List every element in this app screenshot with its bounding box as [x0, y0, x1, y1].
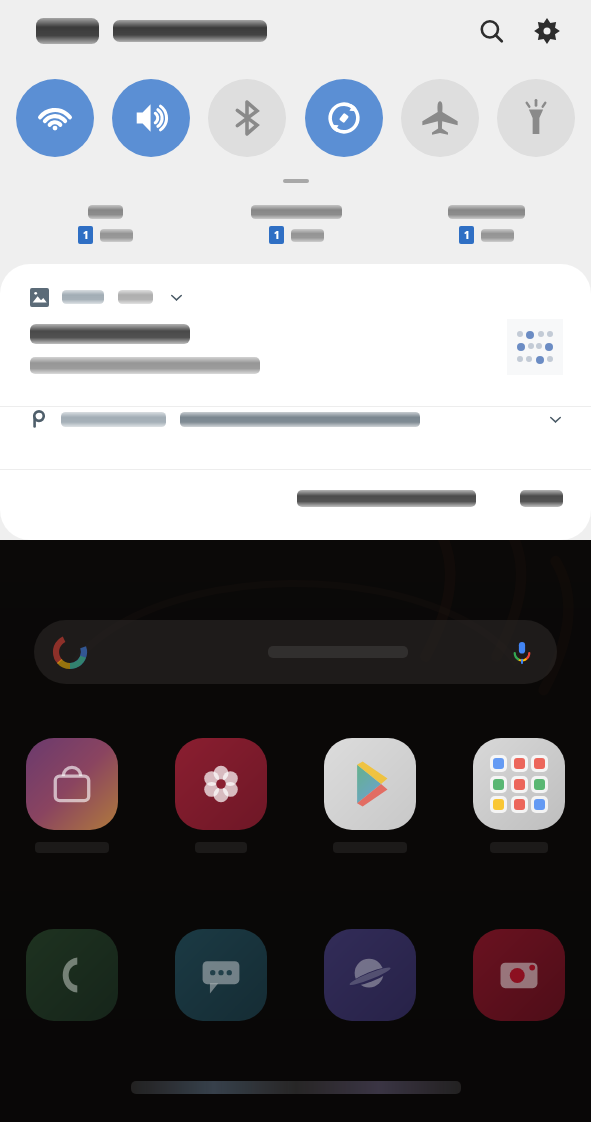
button[interactable] — [297, 490, 476, 507]
button[interactable]: Voice search — [509, 639, 535, 665]
button[interactable]: Camera — [473, 929, 565, 1021]
button[interactable]: Auto rotate — [305, 79, 383, 157]
button[interactable]: Bluetooth — [208, 79, 286, 157]
button[interactable]: Search — [469, 9, 513, 53]
button[interactable]: Expand — [165, 286, 187, 308]
staticText: 1 — [464, 228, 470, 242]
button[interactable]: Expand — [543, 407, 567, 431]
button[interactable]: Phone — [26, 929, 118, 1021]
staticText: 1 — [274, 228, 280, 242]
button[interactable] — [283, 179, 309, 183]
button[interactable]: Search Google — [34, 620, 557, 684]
button[interactable]: Galaxy Store — [26, 738, 118, 830]
button[interactable]: Flight mode — [401, 79, 479, 157]
staticText: 1 — [83, 228, 89, 242]
button[interactable]: Gallery — [175, 738, 267, 830]
button[interactable]: Flashlight — [497, 79, 575, 157]
button[interactable]: Expand — [0, 407, 591, 469]
button[interactable]: Messages — [175, 929, 267, 1021]
button[interactable]: Wi-Fi — [16, 79, 94, 157]
button[interactable]: Expand — [0, 264, 591, 406]
button[interactable] — [520, 490, 563, 507]
button[interactable]: Settings — [525, 9, 569, 53]
button[interactable]: Play Store — [324, 738, 416, 830]
button[interactable]: Google folder — [473, 738, 565, 830]
button[interactable]: Internet — [324, 929, 416, 1021]
button[interactable]: Sound — [112, 79, 190, 157]
